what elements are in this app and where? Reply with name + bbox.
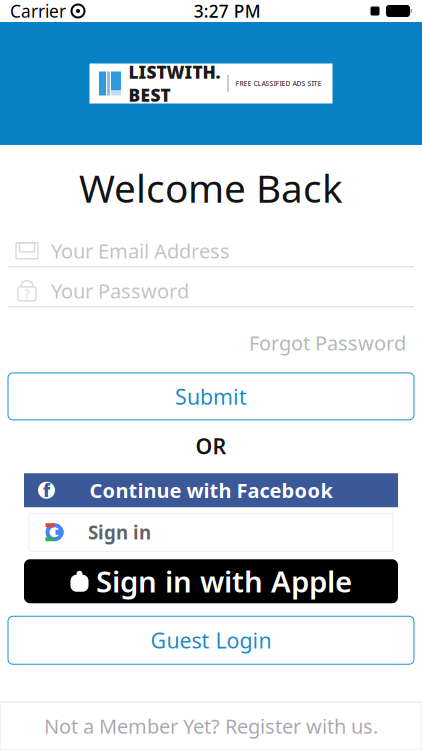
- staticText: Carrier: [10, 0, 66, 22]
- staticText: Continue with Facebook: [89, 477, 332, 504]
- staticText: Sign in: [88, 520, 151, 545]
- staticText: Not a Member Yet? Register with us.: [44, 713, 378, 739]
- button[interactable]: f: [24, 473, 398, 507]
- button[interactable]: Not a Member Yet? Register with us.: [0, 702, 422, 750]
- staticText: Submit: [175, 382, 247, 410]
- button[interactable]: Sign in with Apple: [24, 559, 398, 603]
- staticText: Forgot Password: [249, 329, 406, 356]
- button[interactable]: Sign in: [29, 513, 393, 551]
- button[interactable]: Submit: [8, 373, 414, 420]
- button[interactable]: Forgot Password: [241, 323, 414, 362]
- staticText: Your Password: [51, 278, 189, 304]
- staticText: Guest Login: [150, 626, 271, 654]
- staticText: ?: [24, 286, 29, 302]
- staticText: Welcome Back: [79, 162, 343, 213]
- staticText: 3:27 PM: [194, 0, 261, 22]
- staticText: f: [43, 479, 50, 502]
- staticText: Sign in with Apple: [96, 562, 352, 601]
- staticText: LISTWITH.BEST: [128, 60, 220, 106]
- staticText: Your Email Address: [51, 238, 230, 264]
- staticText: FREE CLASSIFIED ADS SITE: [235, 79, 321, 88]
- staticText: OR: [195, 432, 226, 460]
- button[interactable]: Guest Login: [8, 616, 414, 664]
